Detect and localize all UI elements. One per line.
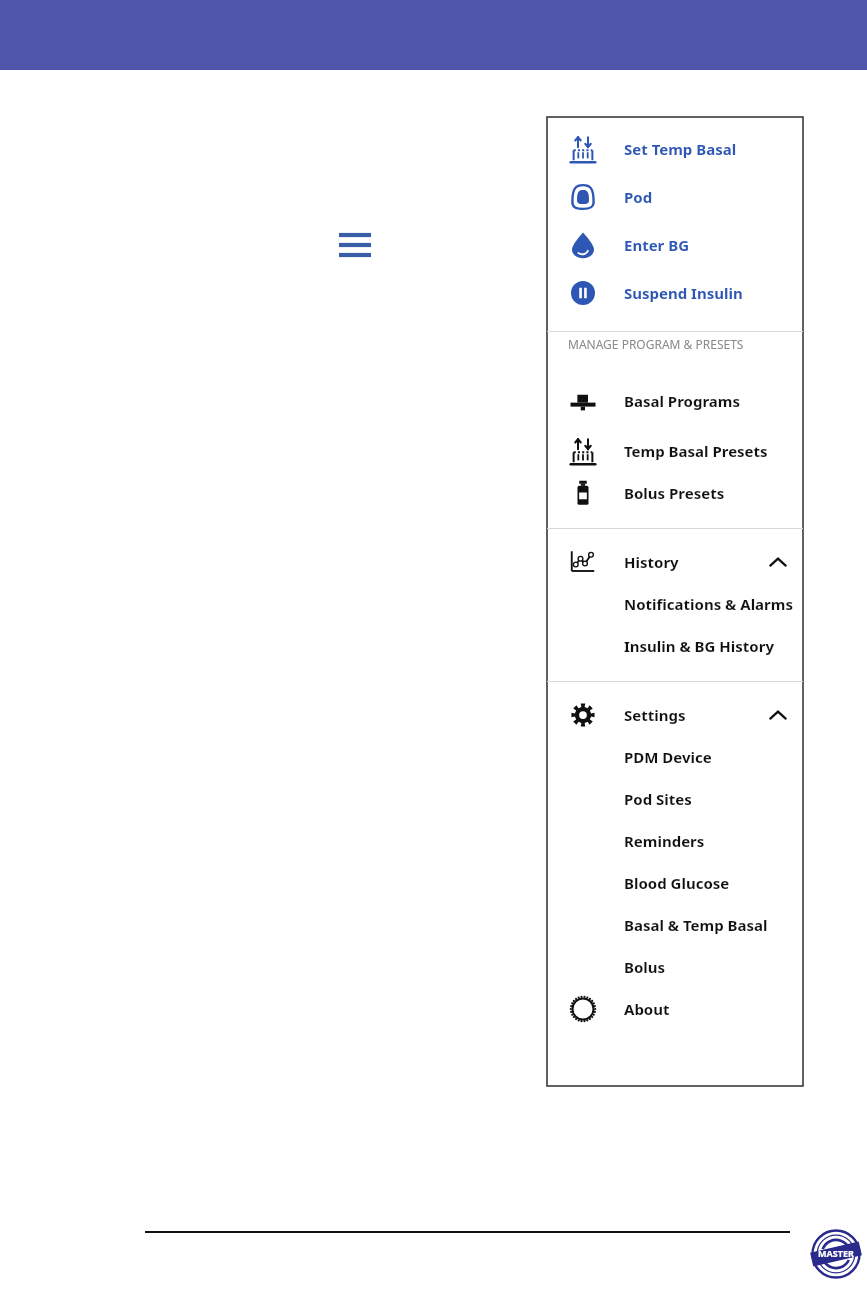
staticText: About xyxy=(624,999,670,1019)
staticText: Set Temp Basal xyxy=(624,139,737,159)
other: Master stamp xyxy=(808,1226,864,1282)
staticText: MANAGE PROGRAM & PRESETS xyxy=(568,336,744,352)
button[interactable]: Pod Sites xyxy=(547,778,803,820)
staticText: Bolus xyxy=(624,957,666,977)
staticText: Settings xyxy=(624,705,686,725)
button[interactable]: Notifications & Alarms xyxy=(547,583,803,625)
button[interactable]: Blood Glucose xyxy=(547,862,803,904)
staticText: Pod xyxy=(624,187,653,207)
staticText: Pod Sites xyxy=(624,789,692,809)
button[interactable]: About xyxy=(547,988,803,1030)
staticText: Blood Glucose xyxy=(624,873,730,893)
staticText: Enter BG xyxy=(624,235,690,255)
button[interactable]: Open navigation menu xyxy=(333,223,377,267)
staticText: History xyxy=(624,552,679,572)
button[interactable]: Basal Programs xyxy=(547,380,803,422)
button[interactable]: Insulin & BG History xyxy=(547,625,803,667)
button[interactable]: Bolus Presets xyxy=(547,472,803,514)
staticText: Suspend Insulin xyxy=(624,283,743,303)
staticText: MASTER xyxy=(818,1247,854,1259)
button[interactable]: Set Temp Basal xyxy=(547,125,803,173)
staticText: PDM Device xyxy=(624,747,712,767)
button[interactable]: Suspend Insulin xyxy=(547,269,803,317)
button[interactable]: Reminders xyxy=(547,820,803,862)
staticText: Reminders xyxy=(624,831,705,851)
button[interactable]: History xyxy=(547,541,803,583)
button[interactable]: Enter BG xyxy=(547,221,803,269)
button[interactable]: PDM Device xyxy=(547,736,803,778)
staticText: Notifications & Alarms xyxy=(624,594,793,614)
button[interactable]: Bolus xyxy=(547,946,803,988)
staticText: Insulin & BG History xyxy=(624,636,775,656)
staticText: Temp Basal Presets xyxy=(624,441,768,461)
button[interactable]: Temp Basal Presets xyxy=(547,430,803,472)
staticText: Basal & Temp Basal xyxy=(624,915,768,935)
button[interactable]: Pod xyxy=(547,173,803,221)
button[interactable]: Basal & Temp Basal xyxy=(547,904,803,946)
staticText: Bolus Presets xyxy=(624,483,725,503)
staticText: Basal Programs xyxy=(624,391,740,411)
button[interactable]: Settings xyxy=(547,694,803,736)
